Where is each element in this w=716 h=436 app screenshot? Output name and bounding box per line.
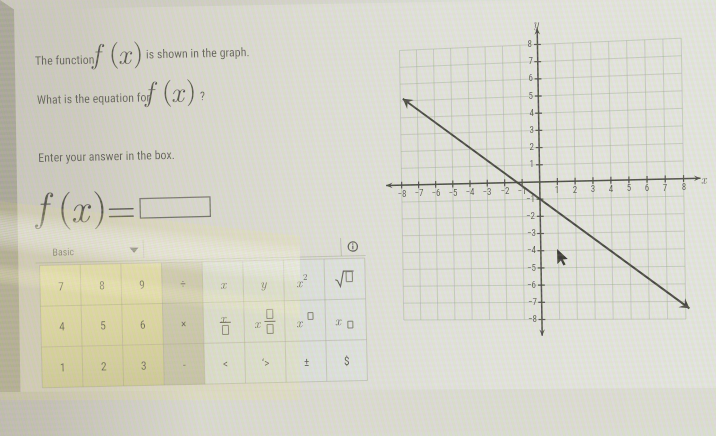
- staticText: $: [344, 354, 350, 367]
- staticText: is shown in the graph.: [146, 45, 250, 61]
- staticText: f: [91, 31, 101, 72]
- button[interactable]: <: [204, 342, 246, 384]
- staticText: ): [132, 31, 144, 70]
- button[interactable]: ‘>: [244, 341, 286, 383]
- staticText: 6: [515, 73, 533, 436]
- staticText: 3: [584, 184, 602, 436]
- staticText: 4: [602, 184, 620, 436]
- staticText: −3: [518, 228, 536, 436]
- staticText: <: [223, 357, 229, 370]
- button[interactable]: 2: [82, 345, 124, 387]
- staticText: y: [533, 14, 539, 31]
- staticText: x: [254, 313, 261, 331]
- staticText: 2: [566, 185, 584, 436]
- staticText: 2: [101, 359, 107, 372]
- staticText: −6: [518, 280, 536, 436]
- staticText: −5: [444, 188, 462, 436]
- staticText: ‘>: [262, 356, 270, 369]
- staticText: −4: [518, 245, 536, 436]
- staticText: 8: [514, 39, 532, 436]
- button[interactable]: 3: [122, 344, 164, 386]
- staticText: 3: [141, 358, 147, 372]
- staticText: (: [161, 70, 173, 108]
- staticText: 1: [516, 159, 534, 436]
- staticText: 7: [58, 279, 64, 292]
- staticText: 2: [516, 142, 534, 436]
- staticText: x: [701, 170, 707, 187]
- button[interactable]: 1: [41, 346, 83, 388]
- button[interactable]: 8: [81, 264, 123, 306]
- staticText: −7: [410, 188, 428, 436]
- staticText: 1: [548, 185, 566, 436]
- button[interactable]: 9: [121, 263, 163, 305]
- staticText: 7: [656, 183, 674, 436]
- staticText: Enter your answer in the box.: [38, 148, 175, 165]
- staticText: =: [106, 179, 137, 233]
- staticText: x: [296, 272, 303, 290]
- staticText: 5: [620, 183, 638, 436]
- staticText: −8: [393, 189, 411, 436]
- staticText: 4: [516, 108, 534, 436]
- staticText: Basic: [52, 246, 74, 259]
- staticText: 8: [675, 182, 693, 436]
- staticText: (: [57, 177, 73, 231]
- staticText: x: [170, 70, 184, 110]
- button[interactable]: 7: [40, 265, 82, 307]
- staticText: 6: [140, 318, 146, 331]
- staticText: 5: [515, 91, 533, 436]
- button[interactable]: x: [203, 261, 244, 303]
- staticText: The function: [35, 53, 95, 68]
- staticText: y: [260, 273, 267, 291]
- staticText: x: [117, 32, 131, 72]
- staticText: f: [144, 69, 154, 109]
- staticText: 9: [139, 278, 145, 291]
- button[interactable]: ×: [162, 302, 204, 344]
- staticText: 7: [515, 56, 533, 436]
- staticText: -: [183, 358, 186, 371]
- staticText: −1: [513, 186, 531, 436]
- button[interactable]: ÷: [162, 262, 203, 304]
- staticText: ): [185, 69, 197, 107]
- staticText: x: [335, 310, 342, 328]
- staticText: ×: [181, 317, 187, 330]
- staticText: 1: [60, 360, 66, 373]
- staticText: 4: [59, 319, 65, 332]
- staticText: x: [220, 274, 227, 292]
- staticText: −4: [461, 187, 479, 436]
- staticText: ?: [200, 89, 206, 103]
- staticText: −2: [517, 211, 535, 436]
- staticText: 3: [516, 125, 534, 436]
- staticText: −7: [519, 297, 537, 436]
- staticText: ÷: [180, 277, 186, 290]
- staticText: x: [220, 308, 227, 326]
- button[interactable]: -: [163, 343, 205, 385]
- button[interactable]: 5: [82, 304, 123, 346]
- staticText: −8: [519, 314, 537, 436]
- staticText: (: [108, 32, 120, 70]
- staticText: −1: [517, 194, 535, 436]
- staticText: f: [35, 176, 49, 233]
- staticText: −5: [518, 263, 536, 436]
- button[interactable]: y: [243, 260, 284, 302]
- staticText: x: [70, 177, 90, 234]
- staticText: What is the equation for: [37, 90, 151, 107]
- staticText: −6: [427, 188, 445, 436]
- staticText: x: [296, 312, 303, 330]
- button[interactable]: 6: [122, 303, 163, 345]
- staticText: −2: [496, 186, 514, 436]
- button[interactable]: ±: [285, 340, 327, 382]
- button[interactable]: 4: [41, 305, 82, 347]
- staticText: ): [92, 176, 108, 231]
- staticText: 5: [100, 318, 106, 332]
- staticText: 8: [99, 278, 105, 292]
- staticText: −3: [478, 187, 496, 436]
- button[interactable]: $: [325, 340, 367, 381]
- staticText: 6: [638, 183, 656, 436]
- staticText: ±: [304, 355, 310, 368]
- staticText: 2: [303, 270, 308, 283]
